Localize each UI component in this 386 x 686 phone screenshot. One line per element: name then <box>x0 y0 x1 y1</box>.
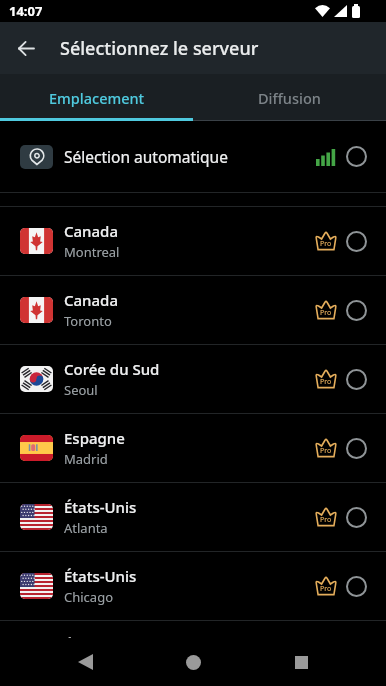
staticText: Atlanta <box>64 519 108 537</box>
staticText: Pro <box>320 308 332 318</box>
button[interactable]: Corée du Sud <box>0 345 386 413</box>
staticText: Sélection automatique <box>64 146 228 167</box>
button[interactable] <box>61 638 109 686</box>
staticText: Sélectionnez le serveur <box>60 36 259 61</box>
staticText: Pro <box>320 515 332 525</box>
button[interactable]: Emplacement <box>0 74 193 121</box>
staticText: États-Unis <box>64 566 137 586</box>
button[interactable]: États-Unis <box>0 552 386 620</box>
button[interactable]: Canada <box>0 207 386 275</box>
button[interactable]: États-Unis <box>0 483 386 551</box>
staticText: 14:07 <box>9 2 43 20</box>
button[interactable] <box>277 638 325 686</box>
button[interactable]: États-Unis <box>0 621 386 638</box>
staticText: Toronto <box>64 312 112 330</box>
staticText: États-Unis <box>64 497 137 517</box>
button[interactable]: Canada <box>0 276 386 344</box>
button[interactable]: Diffusion <box>193 74 386 121</box>
staticText: Corée du Sud <box>64 359 160 379</box>
staticText: Canada <box>64 221 118 241</box>
staticText: Canada <box>64 290 118 310</box>
staticText: Madrid <box>64 450 108 468</box>
staticText: Seoul <box>64 381 98 399</box>
staticText: Emplacement <box>49 88 145 108</box>
staticText: Pro <box>320 377 332 387</box>
staticText: Pro <box>320 239 332 249</box>
button[interactable]: Espagne <box>0 414 386 482</box>
staticText: Pro <box>320 446 332 456</box>
staticText: Chicago <box>64 588 113 606</box>
staticText: Montreal <box>64 243 120 261</box>
staticText: Diffusion <box>258 88 321 108</box>
staticText: Espagne <box>64 428 125 448</box>
staticText: Pro <box>320 584 332 594</box>
button[interactable] <box>0 22 52 74</box>
staticText: États-Unis <box>64 635 137 638</box>
button[interactable]: Sélection automatique <box>0 121 386 192</box>
button[interactable] <box>169 638 217 686</box>
